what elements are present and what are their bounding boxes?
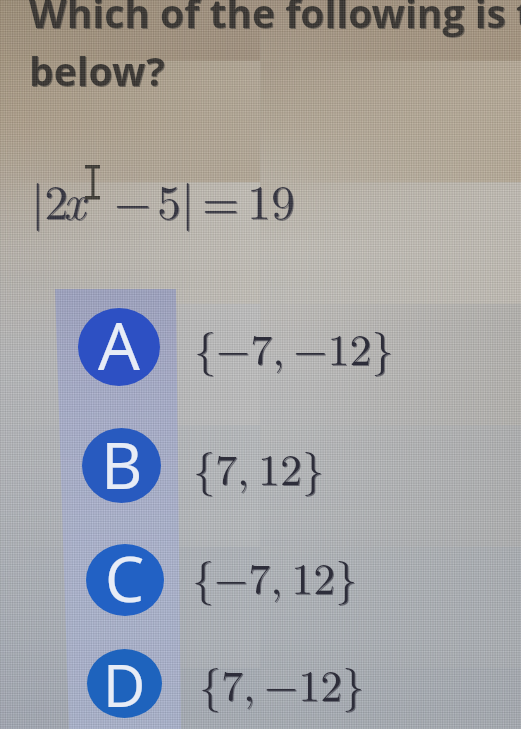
button[interactable]: D [87, 649, 162, 718]
staticText: Which of the following is the [30, 0, 521, 40]
staticText: x [63, 165, 86, 233]
staticText: {−7, 12} [193, 545, 359, 607]
staticText: = [202, 165, 240, 233]
staticText: 5| [157, 165, 195, 233]
staticText: below? [29, 44, 165, 97]
staticText: {7, 12} [194, 436, 326, 498]
staticText: C [105, 536, 145, 608]
button[interactable]: C [86, 544, 164, 616]
staticText: below? [30, 45, 166, 98]
staticText: − [115, 166, 153, 234]
staticText: B [101, 421, 143, 496]
staticText: |2 [32, 166, 70, 234]
staticText: = [203, 166, 241, 234]
staticText: |2 [31, 165, 69, 233]
staticText: A [98, 299, 140, 377]
button[interactable]: B [82, 428, 161, 503]
staticText: 5| [158, 166, 196, 234]
staticText: x [64, 166, 87, 234]
staticText: D [103, 645, 146, 714]
staticText: {7, −12} [199, 651, 365, 713]
staticText: {7, −12} [200, 652, 366, 714]
staticText: {−7, −12} [194, 315, 394, 377]
staticText: {7, 12} [193, 435, 325, 497]
staticText: 19 [248, 166, 297, 234]
staticText: {−7, −12} [195, 316, 395, 378]
button[interactable]: A [78, 308, 160, 386]
staticText: − [114, 165, 152, 233]
staticText: {−7, 12} [192, 544, 358, 606]
staticText: 19 [247, 165, 296, 233]
staticText: Which of the following is the [29, 0, 521, 39]
